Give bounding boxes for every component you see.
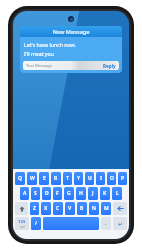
button[interactable]: A [20, 187, 29, 200]
button[interactable]: M [101, 202, 111, 215]
button[interactable]: Reply [100, 63, 119, 69]
button[interactable]: D [42, 187, 51, 200]
button[interactable]: H [76, 187, 86, 200]
button[interactable]: W [27, 172, 37, 185]
staticText: X [44, 205, 48, 212]
staticText: T [66, 175, 69, 182]
button[interactable]: E [39, 172, 49, 185]
staticText: R [54, 175, 58, 182]
staticText: O [110, 175, 114, 182]
button[interactable]: Shift [15, 202, 28, 215]
button[interactable]: X [41, 202, 51, 215]
staticText: B [80, 205, 84, 212]
button[interactable]: Backspace [113, 202, 127, 215]
button[interactable]: P [118, 172, 127, 185]
staticText: U [88, 175, 92, 182]
button[interactable]: K [100, 187, 110, 200]
staticText: / [35, 220, 37, 227]
button[interactable]: F [53, 187, 62, 200]
staticText: M [104, 205, 109, 212]
staticText: C [56, 205, 60, 212]
staticText: 123 [18, 219, 26, 225]
staticText: S [34, 190, 37, 197]
staticText: J [92, 190, 94, 197]
button[interactable]: Space [43, 217, 99, 230]
staticText: D [45, 190, 49, 197]
staticText: A [23, 190, 27, 197]
button[interactable]: B [77, 202, 87, 215]
staticText: W [30, 175, 35, 182]
button[interactable]: . [101, 217, 111, 230]
button[interactable]: Q [15, 172, 25, 185]
staticText: L [116, 190, 119, 197]
staticText: I [100, 175, 102, 182]
staticText: Reply [103, 63, 116, 69]
staticText: E [43, 175, 46, 182]
staticText: P [121, 175, 125, 182]
staticText: sym [20, 225, 25, 229]
button[interactable]: Text Message [23, 61, 119, 70]
staticText: K [103, 190, 107, 197]
button[interactable]: V [65, 202, 75, 215]
button[interactable]: R [51, 172, 61, 185]
button[interactable]: L [112, 187, 122, 200]
button[interactable]: New Message [20, 26, 122, 73]
button[interactable]: N [89, 202, 99, 215]
button[interactable]: S [31, 187, 40, 200]
staticText: H [79, 190, 83, 197]
button[interactable]: 123 [15, 217, 29, 230]
button[interactable]: Y [74, 172, 83, 185]
button[interactable]: I [96, 172, 105, 185]
staticText: V [68, 205, 72, 212]
button[interactable]: Z [30, 202, 39, 215]
button[interactable]: / [31, 217, 41, 230]
staticText: N [92, 205, 96, 212]
staticText: Text Message [26, 63, 52, 69]
staticText: Let's have lunch now. [24, 41, 76, 48]
button[interactable]: C [53, 202, 63, 215]
staticText: ↵ [118, 221, 123, 227]
button[interactable]: U [85, 172, 94, 185]
button[interactable]: J [88, 187, 98, 200]
staticText: G [67, 190, 71, 197]
staticText: Q [18, 175, 22, 182]
button[interactable]: G [64, 187, 74, 200]
staticText: . [105, 220, 107, 227]
button[interactable]: Enter [113, 217, 127, 230]
button[interactable]: T [63, 172, 72, 185]
staticText: I'll meat you [24, 50, 54, 57]
button[interactable]: O [107, 172, 116, 185]
staticText: Z [33, 205, 36, 212]
staticText: Y [77, 175, 81, 182]
staticText: New Message [52, 28, 90, 36]
staticText: F [56, 190, 59, 197]
